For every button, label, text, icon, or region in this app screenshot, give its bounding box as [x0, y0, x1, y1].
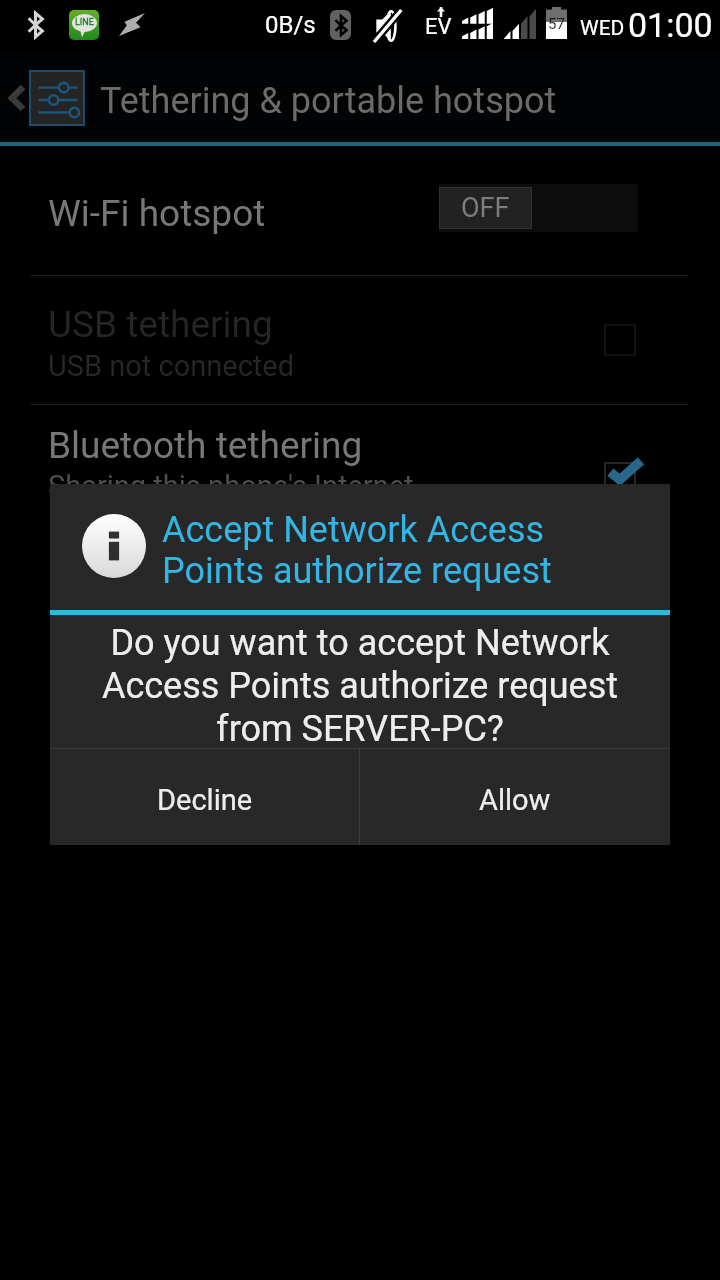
staticText: Accept Network Access Points authorize r…	[162, 509, 582, 592]
button[interactable]	[0, 146, 720, 275]
button[interactable]: Navigate up	[0, 54, 720, 146]
other: Navigate up	[9, 84, 23, 112]
button[interactable]	[0, 404, 720, 533]
button[interactable]: Decline	[50, 749, 359, 845]
button[interactable]	[0, 275, 720, 404]
staticText: LINE	[75, 17, 94, 28]
staticText: 01:00	[628, 5, 713, 45]
staticText: USB not connected	[48, 349, 295, 383]
staticText: Sharing this phone's Internet	[48, 469, 414, 503]
staticText: Do you want to accept Network Access Poi…	[60, 622, 660, 750]
staticText: USB tethering	[48, 303, 273, 346]
staticText: Wi-Fi hotspot	[48, 192, 266, 235]
staticText: Allow	[479, 783, 551, 817]
staticText: Tethering & portable hotspot	[100, 80, 557, 122]
staticText: 57	[548, 15, 565, 33]
staticText: Bluetooth tethering	[48, 424, 363, 467]
button[interactable]: Allow	[360, 749, 670, 845]
staticText: OFF	[461, 192, 510, 224]
staticText: Decline	[157, 783, 253, 817]
staticText: WED	[580, 16, 625, 41]
staticText: 0B/s	[265, 11, 316, 39]
staticText: EV	[425, 14, 452, 40]
